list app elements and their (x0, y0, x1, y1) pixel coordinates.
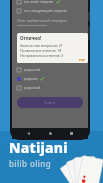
staticText: дорогв (24, 76, 38, 81)
button[interactable]: дорогв (17, 30, 83, 39)
button[interactable]: дорогв (17, 74, 83, 83)
button[interactable]: на этой неделе (17, 0, 83, 6)
staticText: Количество вопросов: 21 (20, 43, 63, 48)
button[interactable]: на следующий неделе (17, 6, 83, 15)
button[interactable]: Yubor (17, 97, 83, 108)
staticText: дорогий (24, 67, 41, 72)
staticText: на следующий неделе (24, 8, 68, 13)
button[interactable]: Recent apps (67, 129, 76, 138)
staticText: Natijani (9, 138, 68, 157)
staticText: Отлично! (20, 35, 42, 41)
staticText: на этой неделе (24, 0, 54, 4)
button[interactable]: Home (46, 129, 55, 138)
button[interactable]: дорогий (17, 83, 83, 92)
staticText: Правильных ответов: 18 (20, 48, 62, 53)
button[interactable]: Back (24, 129, 33, 138)
button[interactable]: дорогий (17, 65, 83, 74)
staticText: OK (79, 58, 85, 61)
staticText: дорогв (24, 32, 38, 37)
staticText: bilib oling (9, 158, 52, 169)
button[interactable]: OK (79, 58, 85, 61)
staticText: Yubor (44, 100, 56, 105)
staticText: Неправильных ответов: 3 (20, 53, 64, 58)
staticText: Отог мобильный телефон (17, 18, 68, 23)
staticText: дорогий (24, 85, 41, 90)
